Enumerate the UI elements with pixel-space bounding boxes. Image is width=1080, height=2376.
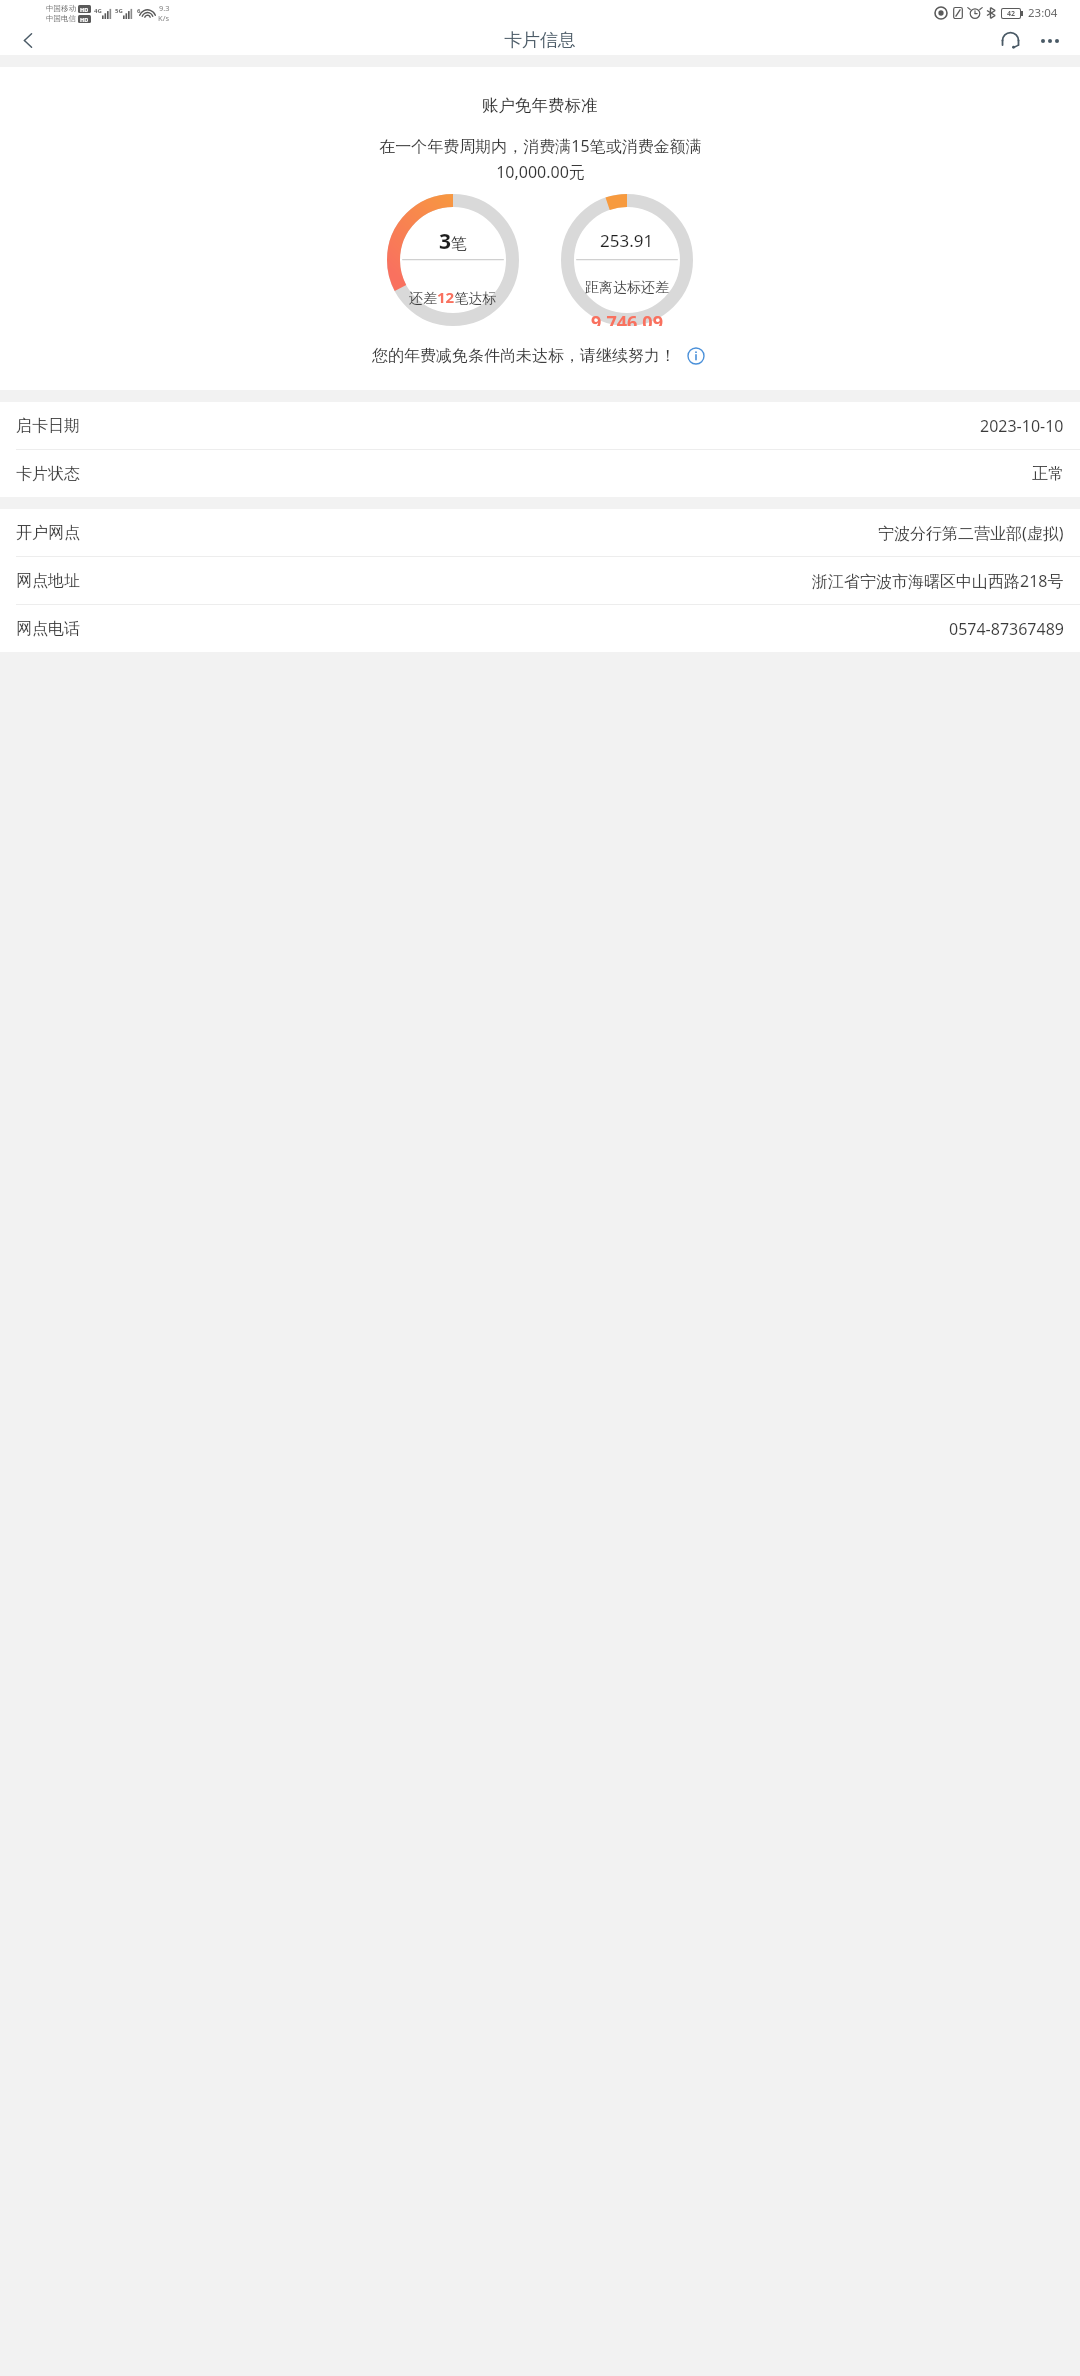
staticText: 在一个年费周期内，消费满15笔或消费金额满 10,000.00元 <box>379 135 702 182</box>
staticText: 中国电信 <box>46 14 76 23</box>
staticText: 网点地址 <box>16 571 80 591</box>
staticText: 还差12笔达标 <box>409 287 497 307</box>
staticText: 卡片状态 <box>16 464 80 484</box>
button[interactable]: 卡片状态 <box>0 450 1080 497</box>
staticText: 您的年费减免条件尚未达标，请继续努力！ <box>372 346 676 366</box>
button[interactable]: 开户网点 <box>0 509 1080 556</box>
button[interactable]: 启卡日期 <box>0 402 1080 449</box>
button[interactable]: 客服 <box>990 26 1030 55</box>
staticText: 2023-10-10 <box>980 415 1064 437</box>
staticText: 9,746.09 <box>591 310 663 326</box>
staticText: 正常 <box>1032 464 1064 484</box>
staticText: 5G <box>115 7 123 15</box>
staticText: HD <box>80 6 89 13</box>
staticText: 启卡日期 <box>16 416 80 436</box>
staticText: 253.91 <box>600 229 654 252</box>
staticText: 0574-87367489 <box>949 618 1064 640</box>
button[interactable]: 网点电话 <box>0 605 1080 652</box>
staticText: 网点电话 <box>16 619 80 639</box>
staticText: 账户免年费标准 <box>482 95 598 116</box>
button[interactable]: 说明 <box>684 344 708 368</box>
button[interactable]: 返回 <box>6 26 50 55</box>
staticText: 42 <box>1007 9 1016 18</box>
staticText: K/s <box>158 13 170 23</box>
staticText: 距离达标还差 <box>585 279 669 297</box>
staticText: 6 <box>137 7 141 15</box>
staticText: 宁波分行第二营业部(虚拟) <box>878 522 1064 544</box>
button[interactable]: 更多 <box>1030 26 1070 55</box>
button[interactable]: 网点地址 <box>0 557 1080 604</box>
staticText: 3笔 <box>439 227 468 256</box>
staticText: 4G <box>94 7 102 15</box>
staticText: 23:04 <box>1028 5 1058 21</box>
staticText: HD <box>80 16 89 23</box>
staticText: 中国移动 <box>46 4 76 13</box>
staticText: 浙江省宁波市海曙区中山西路218号 <box>812 570 1064 592</box>
staticText: 开户网点 <box>16 523 80 543</box>
staticText: 9.3 <box>159 3 170 13</box>
staticText: 卡片信息 <box>504 29 576 52</box>
